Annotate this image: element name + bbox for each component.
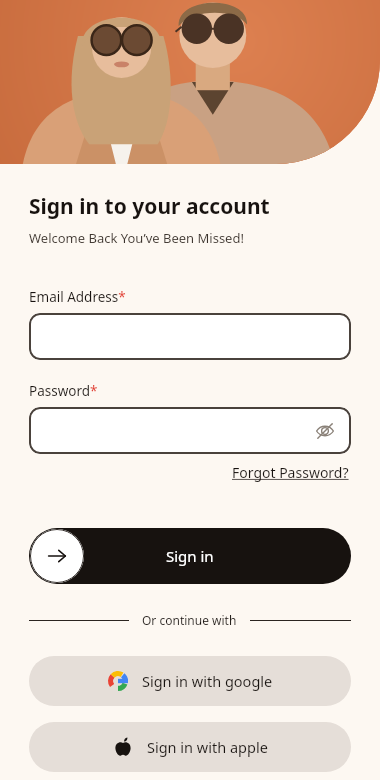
staticText: Sign in with apple: [147, 737, 268, 757]
staticText: Sign in with google: [142, 671, 273, 691]
button[interactable]: Show password: [29, 407, 351, 454]
staticText: Sign in to your account: [29, 192, 270, 221]
button[interactable]: Show password: [311, 417, 339, 445]
staticText: Forgot Password?: [232, 463, 349, 482]
button[interactable]: Sign in: [29, 528, 351, 584]
staticText: Sign in: [166, 546, 214, 566]
staticText: Password*: [29, 382, 98, 400]
button[interactable]: [29, 313, 351, 360]
staticText: Welcome Back You’ve Been Missed!: [29, 229, 244, 247]
staticText: Or continue with: [142, 612, 237, 628]
button[interactable]: Sign in with google: [29, 656, 351, 706]
staticText: Email Address*: [29, 288, 126, 306]
button[interactable]: Forgot Password?: [230, 462, 351, 483]
button[interactable]: Sign in with apple: [29, 722, 351, 772]
